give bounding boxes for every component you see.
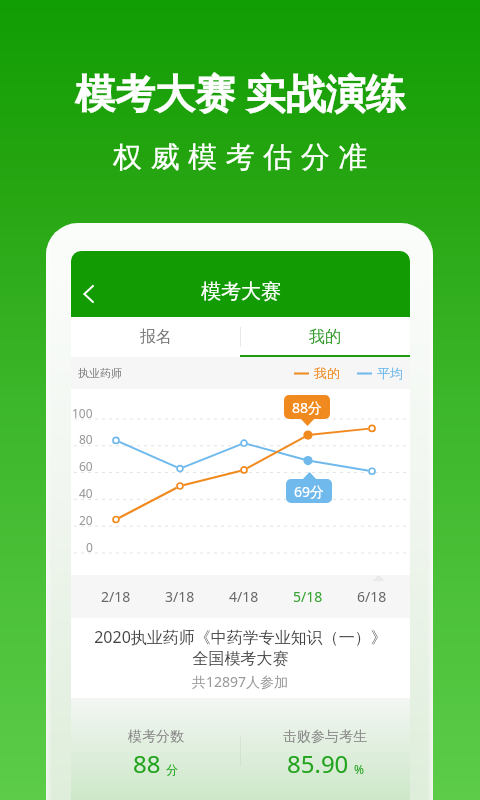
- staticText: 我的: [309, 327, 341, 347]
- staticText: 模考大赛 实战演练: [75, 65, 406, 120]
- staticText: 我的: [314, 365, 340, 381]
- staticText: 88分: [292, 398, 323, 417]
- button[interactable]: 报名: [71, 317, 240, 357]
- staticText: 分: [166, 762, 178, 777]
- staticText: 5/18: [293, 587, 323, 606]
- staticText: 共12897人参加: [192, 672, 289, 691]
- staticText: 报名: [140, 327, 172, 347]
- staticText: 击败参与考生: [283, 728, 367, 746]
- staticText: 权 威 模 考 估 分 准: [113, 136, 368, 176]
- staticText: 88: [133, 747, 161, 780]
- staticText: 4/18: [229, 587, 259, 606]
- staticText: 平均: [377, 365, 403, 381]
- staticText: 模考大赛: [201, 279, 281, 304]
- staticText: 3/18: [165, 587, 195, 606]
- staticText: 100: [72, 405, 93, 421]
- staticText: 40: [79, 485, 93, 501]
- staticText: 执业药师: [78, 366, 122, 380]
- button[interactable]: 我的: [240, 317, 410, 357]
- staticText: 2/18: [101, 587, 131, 606]
- staticText: 20: [79, 512, 93, 528]
- staticText: 0: [86, 539, 93, 555]
- staticText: 模考分数: [128, 728, 184, 746]
- staticText: %: [354, 761, 364, 777]
- staticText: 69分: [294, 482, 325, 501]
- staticText: 60: [79, 458, 93, 474]
- staticText: 80: [79, 431, 93, 447]
- staticText: 85.90: [287, 747, 349, 780]
- staticText: 6/18: [357, 587, 387, 606]
- button[interactable]: Back: [71, 271, 107, 317]
- staticText: 2020执业药师《中药学专业知识（一）》 全国模考大赛: [94, 626, 387, 668]
